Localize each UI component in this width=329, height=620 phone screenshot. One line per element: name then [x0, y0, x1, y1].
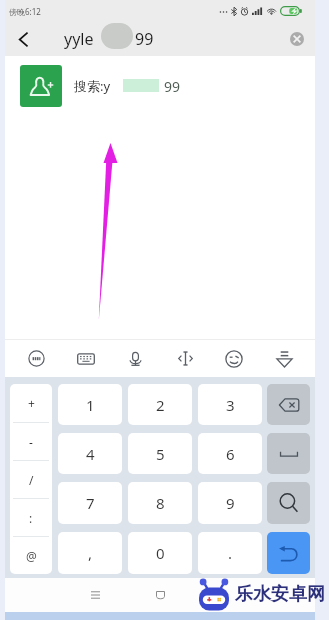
staticText: / — [29, 472, 34, 488]
button[interactable]: Home — [146, 581, 174, 609]
button[interactable]: Input method — [18, 340, 54, 377]
button[interactable]: 3 — [198, 384, 262, 425]
button[interactable]: 2 — [128, 384, 192, 425]
staticText: 0 — [156, 543, 165, 563]
button[interactable]: , — [58, 532, 122, 574]
button[interactable]: Keyboard — [68, 340, 104, 377]
staticText: , — [88, 543, 93, 563]
staticText: 3 — [226, 395, 235, 415]
staticText: 6 — [226, 444, 235, 464]
staticText: 1 — [86, 395, 95, 415]
staticText: . — [228, 543, 233, 563]
button[interactable]: . — [198, 532, 262, 574]
button[interactable]: 6 — [198, 433, 262, 474]
staticText: 9 — [226, 493, 235, 513]
button[interactable]: 1 — [58, 384, 122, 425]
button[interactable]: 0 — [128, 532, 192, 574]
button[interactable]: Backspace — [267, 384, 310, 425]
button[interactable]: 搜索:y — [5, 56, 315, 116]
button[interactable]: 7 — [58, 482, 122, 524]
staticText: yyle — [64, 28, 94, 50]
staticText: 乐水安卓网 — [235, 583, 325, 606]
staticText: 5 — [156, 444, 165, 464]
button[interactable]: Search — [267, 482, 310, 524]
staticText: - — [29, 434, 33, 450]
staticText: @ — [26, 548, 37, 564]
staticText: 4 — [86, 444, 95, 464]
button[interactable]: 5 — [128, 433, 192, 474]
staticText: 7 — [86, 493, 95, 513]
button[interactable]: Recents — [81, 581, 109, 609]
staticText: 2 — [156, 395, 165, 415]
button[interactable]: @ — [10, 537, 52, 574]
button[interactable]: + — [10, 384, 52, 422]
button[interactable]: Hide keyboard — [266, 340, 302, 377]
button[interactable]: Emoji — [216, 340, 252, 377]
staticText: 傍晚6:12 — [9, 6, 41, 17]
staticText: 8 — [156, 493, 165, 513]
button[interactable]: Back — [11, 22, 35, 56]
button[interactable]: 4 — [58, 433, 122, 474]
button[interactable]: Cursor move — [167, 340, 203, 377]
button[interactable]: 8 — [128, 482, 192, 524]
button[interactable]: : — [10, 499, 52, 536]
button[interactable]: Voice input — [117, 340, 153, 377]
button[interactable]: Clear — [285, 27, 309, 51]
staticText: + — [28, 395, 35, 411]
button[interactable]: 9 — [198, 482, 262, 524]
staticText: : — [29, 510, 33, 526]
button[interactable]: - — [10, 423, 52, 460]
button[interactable]: / — [10, 461, 52, 498]
button[interactable]: Space — [267, 433, 310, 474]
staticText: 99 — [135, 28, 154, 50]
button[interactable]: Enter — [267, 532, 310, 574]
staticText: 99 — [164, 77, 181, 96]
staticText: 搜索:y — [74, 77, 111, 95]
